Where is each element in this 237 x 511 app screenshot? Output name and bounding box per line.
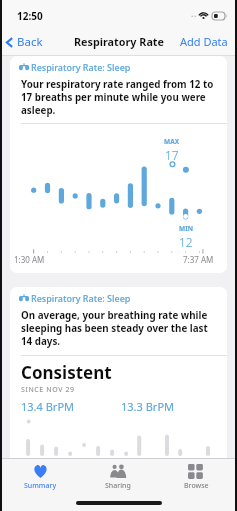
staticText: 13.4 BrPM — [21, 399, 75, 414]
staticText: Respiratory Rate: Sleep — [31, 61, 131, 73]
button[interactable]: Browse — [157, 463, 235, 492]
staticText: MAX — [164, 137, 179, 146]
staticText: Your respiratory rate ranged from 12 to … — [21, 78, 219, 117]
staticText: 17 — [165, 147, 179, 163]
button[interactable]: Sharing — [79, 463, 157, 492]
button[interactable]: Back — [2, 34, 49, 50]
staticText: 12 — [179, 234, 193, 250]
staticText: 13.3 BrPM — [121, 399, 175, 414]
button[interactable]: Respiratory Rate: Sleep — [10, 287, 227, 487]
button[interactable]: Respiratory Rate: Sleep — [10, 56, 227, 273]
staticText: Respiratory Rate: Sleep — [31, 292, 131, 304]
staticText: MIN — [179, 224, 193, 233]
staticText: Consistent — [21, 361, 112, 384]
staticText: Sharing — [105, 481, 131, 491]
staticText: Browse — [184, 481, 209, 491]
staticText: 7:37 AM — [183, 254, 214, 265]
button[interactable]: Add Data — [172, 34, 235, 49]
staticText: Summary — [24, 481, 57, 491]
staticText: Back — [17, 34, 43, 50]
button[interactable]: Summary — [2, 463, 79, 492]
staticText: On average, your breathing rate while sl… — [21, 309, 219, 348]
staticText: SINCE NOV 29 — [21, 385, 75, 395]
staticText: Add Data — [180, 34, 228, 49]
staticText: 1:30 AM — [14, 254, 45, 265]
staticText: 12:50 — [17, 9, 43, 23]
staticText: Respiratory Rate — [74, 34, 164, 49]
